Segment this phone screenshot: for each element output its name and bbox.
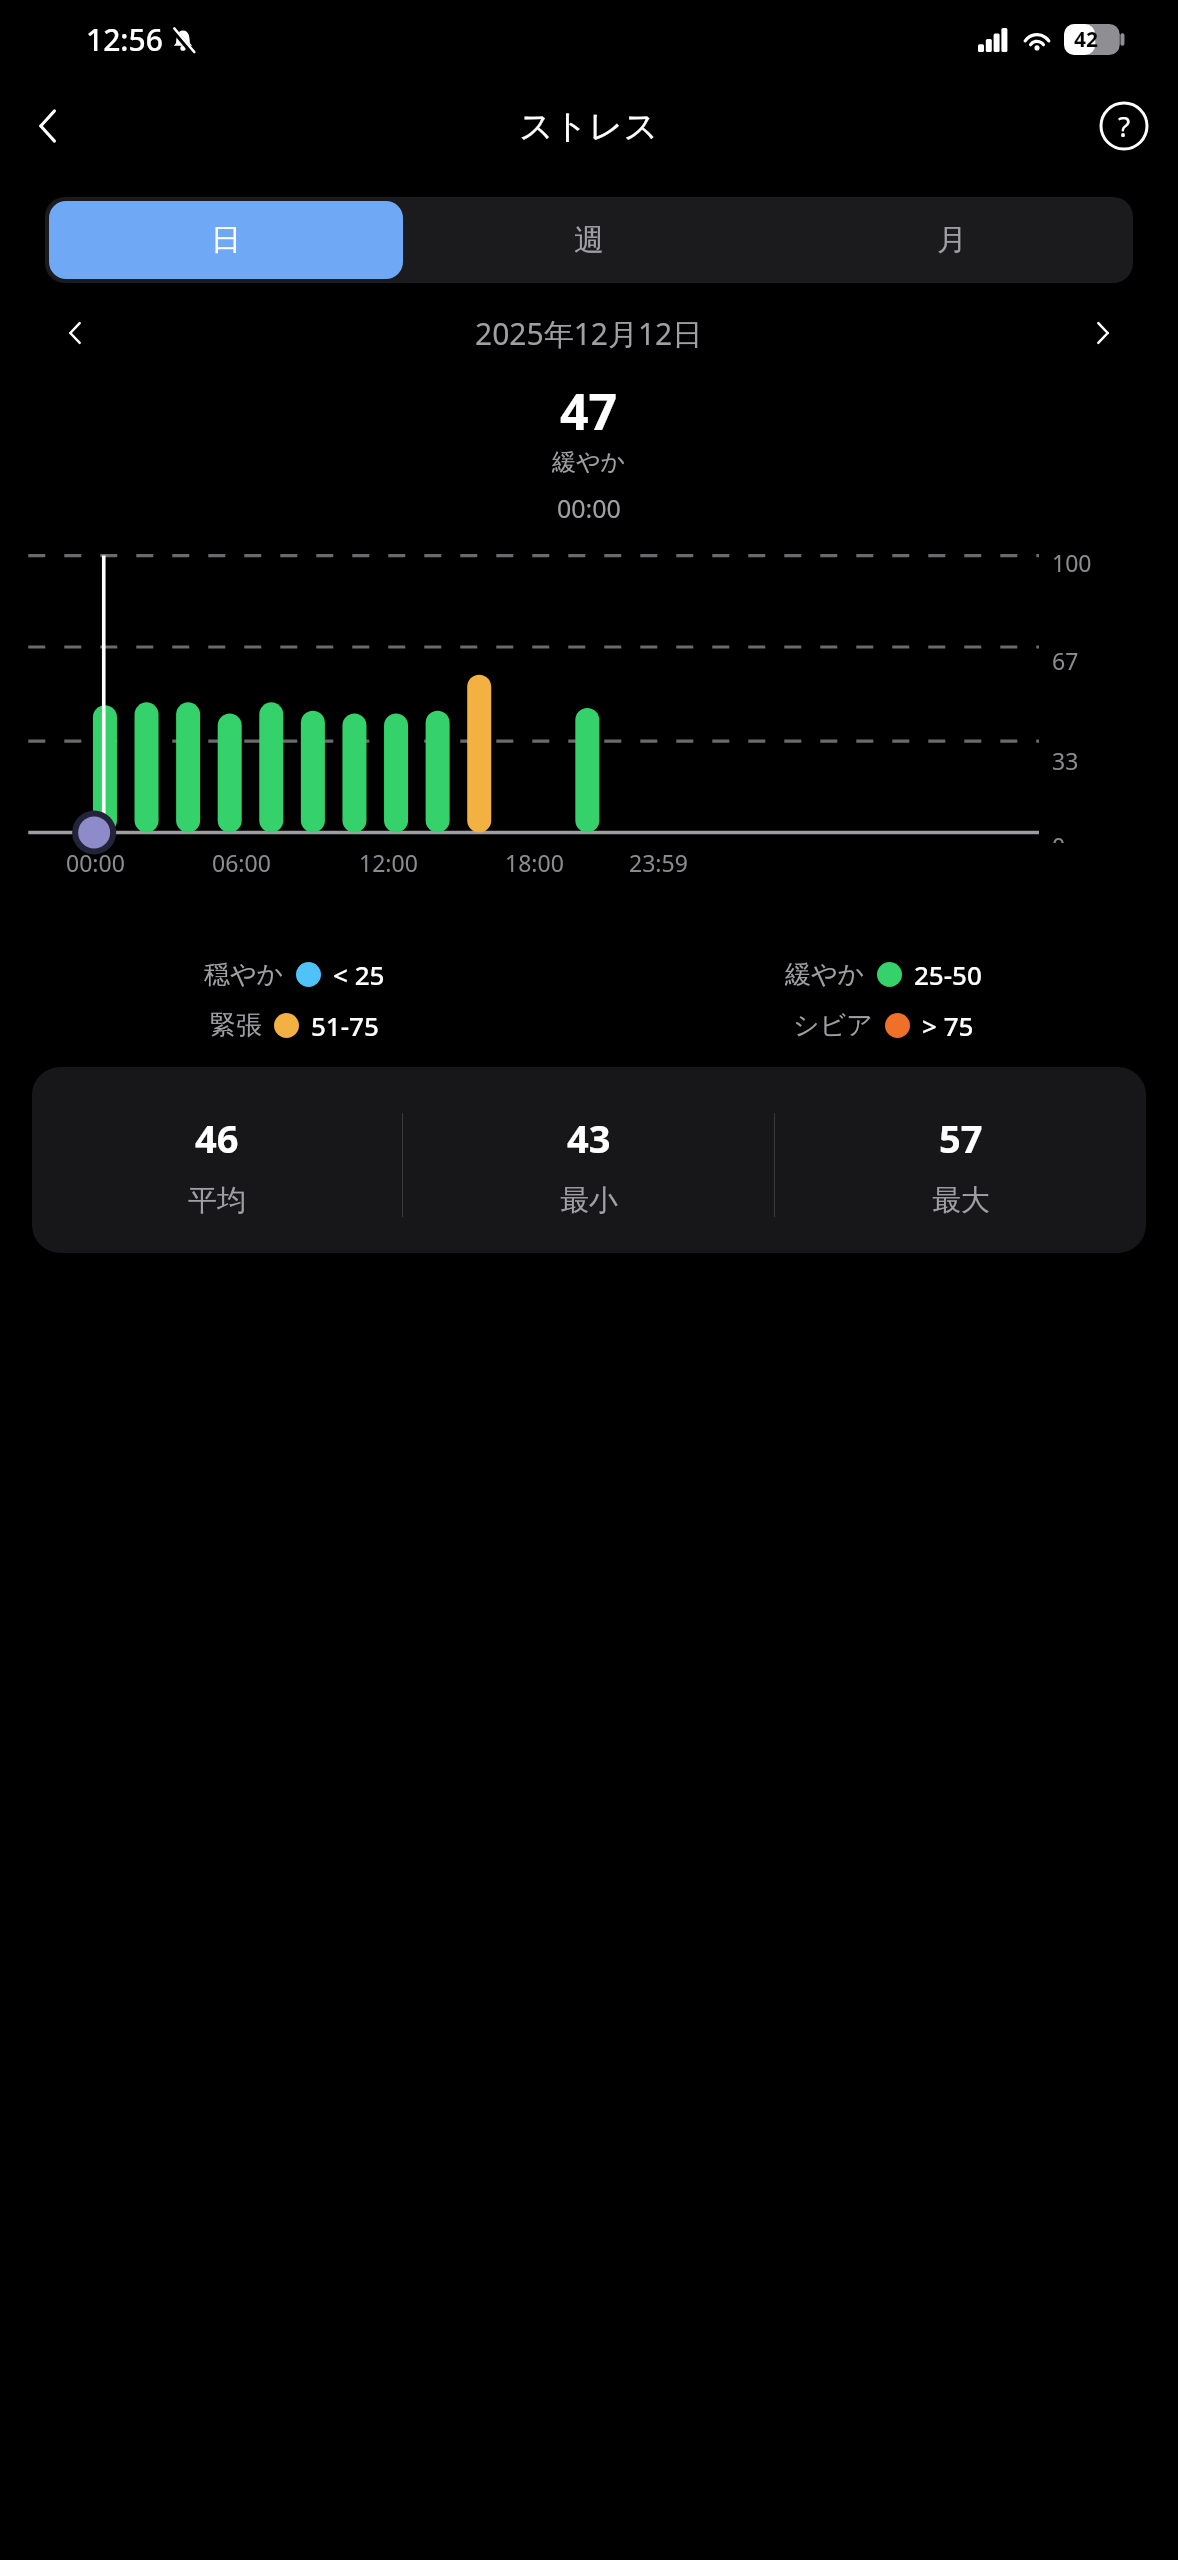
staticText: 緩やか [785,958,865,991]
staticText: 週 [574,221,604,259]
staticText: 穏やか [204,958,284,991]
button[interactable]: 週 [411,201,766,279]
staticText: 25-50 [914,957,982,992]
staticText: シビア [793,1009,873,1042]
staticText: 42 [1074,25,1099,54]
button[interactable]: ヘルプ [1088,90,1160,162]
staticText: ストレス [519,105,659,148]
staticText: 0 [1052,830,1066,843]
staticText: 00:00 [557,491,621,525]
staticText: 平均 [188,1182,246,1219]
staticText: 最小 [560,1182,618,1219]
staticText: 51-75 [311,1008,379,1043]
staticText: 47 [560,377,618,445]
staticText: 12:56 [86,19,163,60]
staticText: 12:00 [359,847,418,878]
button[interactable]: 月 [774,201,1129,279]
staticText: 67 [1052,645,1079,676]
button[interactable]: 前の日 [44,302,106,364]
staticText: 2025年12月12日 [475,313,703,354]
staticText: 00:00 [66,847,125,878]
button[interactable]: 戻る [12,90,84,162]
staticText: 日 [211,221,241,259]
staticText: 33 [1052,745,1079,776]
staticText: 57 [939,1112,983,1164]
staticText: 43 [567,1112,611,1164]
button[interactable]: 日 [49,201,403,279]
staticText: 23:59 [629,847,688,878]
staticText: 緩やか [552,447,626,477]
button[interactable]: 次の日 [1072,302,1134,364]
staticText: 100 [1052,547,1092,578]
staticText: < 25 [333,957,385,992]
staticText: 18:00 [505,847,564,878]
staticText: ? [1118,107,1131,145]
staticText: > 75 [922,1008,974,1043]
staticText: 46 [195,1112,239,1164]
staticText: 緊張 [210,1009,262,1042]
staticText: 月 [937,221,967,259]
staticText: 06:00 [212,847,271,878]
staticText: 最大 [932,1182,990,1219]
button[interactable]: 46 [32,1067,1146,1253]
